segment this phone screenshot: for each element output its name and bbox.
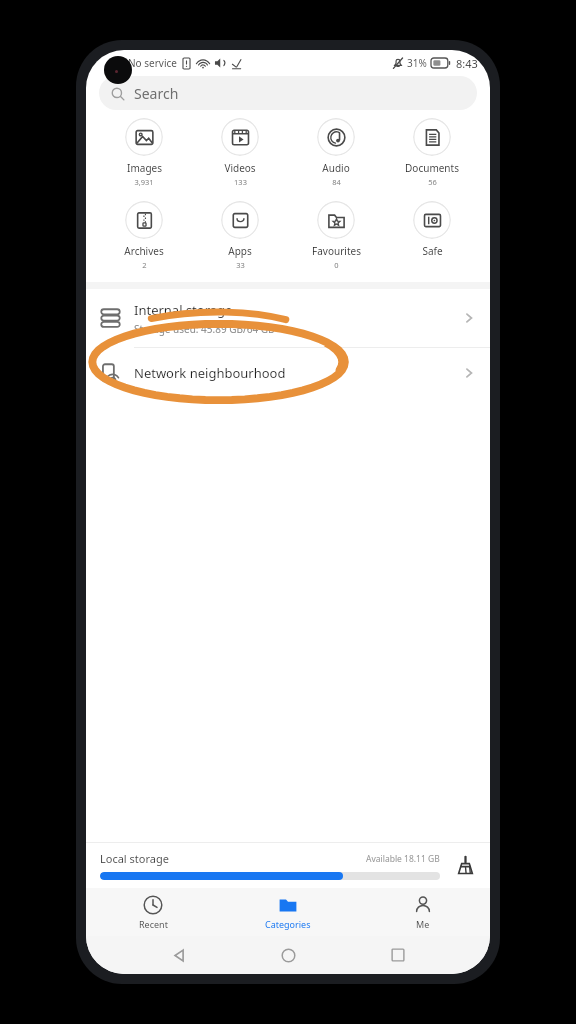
staticText: 56 [428,177,437,187]
button[interactable]: Me [355,888,490,936]
staticText: Documents [405,161,459,175]
button[interactable]: Images [96,116,192,189]
staticText: No service [128,56,177,70]
button[interactable]: Recent apps [381,938,415,972]
button[interactable]: Videos [192,116,288,189]
button[interactable]: Network neighbourhood [86,348,490,398]
button[interactable]: Audio [288,116,384,189]
button[interactable]: Recent [86,888,220,936]
button[interactable]: Documents [384,116,480,189]
staticText: Audio [322,161,350,175]
staticText: Storage used: 45.89 GB/64 GB [134,322,275,336]
staticText: 3,931 [134,177,154,187]
staticText: Network neighbourhood [134,364,286,382]
staticText: Favourites [312,244,361,258]
staticText: Internal storage [134,301,233,319]
button[interactable]: Apps [192,199,288,272]
staticText: Archives [124,244,164,258]
staticText: Videos [224,161,256,175]
staticText: Categories [265,918,311,930]
button[interactable]: Home [271,938,305,972]
button[interactable]: Categories [220,888,355,936]
staticText: 133 [234,177,247,187]
staticText: Available 18.11 GB [366,853,440,865]
staticText: 8:43 [456,56,478,71]
staticText: Images [127,161,162,175]
staticText: Apps [228,244,252,258]
button[interactable]: Internal storage [86,289,490,347]
button[interactable]: Favourites [288,199,384,272]
staticText: 0 [334,260,339,270]
staticText: Me [416,918,430,930]
staticText: Safe [422,244,443,258]
staticText: Local storage [100,851,169,866]
staticText: 2 [142,260,147,270]
staticText: 84 [332,177,341,187]
staticText: Recent [139,918,168,930]
button[interactable]: Archives [96,199,192,272]
button[interactable]: Clean up storage [450,850,480,880]
staticText: 31% [407,56,427,70]
button[interactable]: Back [162,938,196,972]
staticText: Search [134,84,179,103]
staticText: 33 [236,260,245,270]
button[interactable]: Search [99,76,477,110]
button[interactable]: Safe [384,199,480,271]
